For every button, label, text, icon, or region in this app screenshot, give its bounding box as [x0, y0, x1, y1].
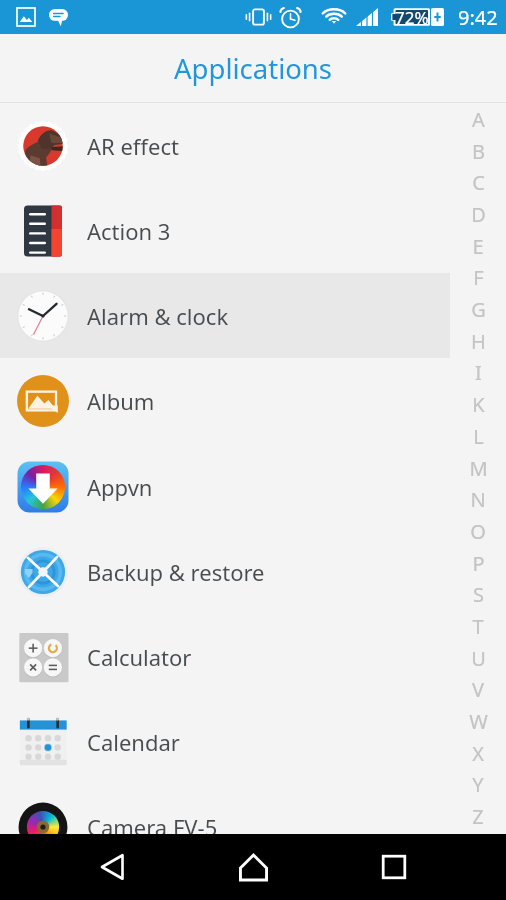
staticText: H	[471, 328, 486, 355]
staticText: L	[473, 423, 484, 450]
staticText: Backup & restore	[87, 557, 265, 587]
staticText: I	[475, 359, 482, 386]
staticText: Y	[472, 771, 484, 798]
staticText: U	[471, 645, 486, 672]
button[interactable]: AR effect	[0, 103, 506, 188]
button[interactable]: Recent apps	[324, 834, 506, 900]
staticText: V	[472, 676, 484, 703]
button[interactable]: Backup & restore	[0, 529, 506, 614]
staticText: Action 3	[87, 216, 171, 246]
staticText: Album	[87, 386, 155, 416]
staticText: K	[472, 391, 485, 418]
staticText: 72%	[395, 6, 429, 29]
staticText: Calendar	[87, 727, 180, 757]
button[interactable]: Album	[0, 358, 506, 443]
staticText: N	[470, 486, 486, 513]
staticText: S	[473, 581, 484, 608]
staticText: W	[469, 708, 488, 735]
staticText: O	[470, 518, 486, 545]
button[interactable]: Back	[0, 834, 182, 900]
staticText: D	[471, 201, 486, 228]
staticText: B	[472, 138, 485, 165]
staticText: T	[472, 613, 484, 640]
staticText: E	[472, 233, 484, 260]
staticText: F	[473, 264, 484, 291]
button[interactable]: Action 3	[0, 188, 506, 273]
button[interactable]: Camera FV-5	[0, 784, 506, 834]
staticText: G	[471, 296, 486, 323]
staticText: X	[472, 740, 484, 767]
staticText: M	[469, 455, 488, 482]
staticText: Z	[472, 803, 484, 830]
button[interactable]: Alarm & clock	[0, 273, 506, 358]
button[interactable]: Home	[182, 834, 324, 900]
button[interactable]: Calculator	[0, 614, 506, 699]
staticText: P	[472, 550, 485, 577]
button[interactable]: Calendar	[0, 699, 506, 784]
staticText: C	[472, 169, 485, 196]
staticText: AR effect	[87, 131, 179, 161]
staticText: Camera FV-5	[87, 812, 218, 834]
staticText: Alarm & clock	[87, 301, 229, 331]
button[interactable]: Appvn	[0, 444, 506, 529]
staticText: 9:42	[458, 4, 498, 31]
staticText: A	[472, 106, 485, 133]
staticText: Appvn	[87, 472, 153, 502]
staticText: Applications	[174, 50, 333, 87]
staticText: Calculator	[87, 642, 192, 672]
